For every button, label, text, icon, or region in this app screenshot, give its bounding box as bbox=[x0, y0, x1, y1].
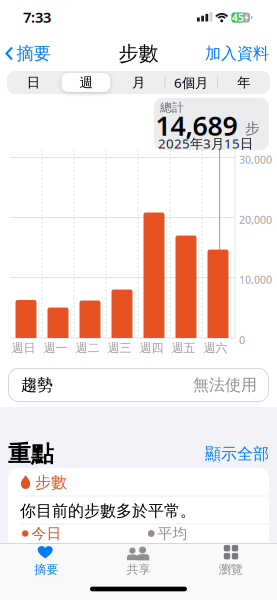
staticText: 顯示全部 bbox=[205, 444, 269, 464]
button[interactable]: 顯示全部 bbox=[197, 444, 269, 464]
staticText: 共享 bbox=[126, 562, 150, 577]
staticText: 你目前的步數多於平常。 bbox=[20, 501, 196, 521]
staticText: 週三 bbox=[107, 341, 131, 355]
staticText: 日 bbox=[27, 74, 40, 91]
staticText: 年 bbox=[237, 74, 250, 91]
button[interactable]: 加入資料 bbox=[197, 41, 269, 65]
staticText: 加入資料 bbox=[205, 44, 269, 63]
staticText: 月 bbox=[132, 74, 145, 91]
staticText: 6個月 bbox=[174, 74, 208, 91]
staticText: 步數 bbox=[35, 473, 67, 492]
staticText: 週日 bbox=[11, 341, 35, 355]
staticText: 瀏覽 bbox=[219, 562, 243, 577]
staticText: 20,000 bbox=[239, 212, 272, 227]
button[interactable]: 共享 bbox=[115, 545, 161, 573]
button[interactable]: 摘要 bbox=[5, 41, 67, 65]
button[interactable]: 週 bbox=[61, 71, 111, 94]
button[interactable]: 步數 bbox=[8, 468, 269, 552]
staticText: 週六 bbox=[203, 341, 227, 355]
staticText: 週 bbox=[79, 74, 92, 91]
button[interactable]: 年 bbox=[219, 71, 269, 94]
staticText: 摘要 bbox=[34, 562, 58, 577]
staticText: 10,000 bbox=[239, 272, 272, 287]
staticText: 摘要 bbox=[16, 43, 50, 64]
staticText: 30,000 bbox=[239, 152, 272, 167]
staticText: 趨勢 bbox=[21, 375, 53, 395]
button[interactable]: 日 bbox=[8, 71, 58, 94]
staticText: 今日 bbox=[31, 524, 61, 542]
staticText: 平均 bbox=[157, 524, 187, 542]
staticText: 週二 bbox=[75, 341, 99, 355]
staticText: 總計 bbox=[160, 100, 184, 115]
staticText: 45 bbox=[232, 10, 244, 24]
staticText: 週四 bbox=[139, 341, 163, 355]
staticText: 步數 bbox=[118, 41, 158, 66]
button[interactable]: 6個月 bbox=[166, 71, 216, 94]
staticText: 週一 bbox=[43, 341, 67, 355]
staticText: 週五 bbox=[171, 341, 195, 355]
staticText: 7:33 bbox=[23, 7, 51, 27]
staticText: 步 bbox=[245, 119, 260, 137]
staticText: 2025年3月15日 bbox=[158, 134, 253, 152]
button[interactable]: 瀏覽 bbox=[208, 545, 254, 573]
staticText: 無法使用 bbox=[193, 375, 257, 395]
staticText: 0 bbox=[239, 333, 245, 347]
staticText: 14,689 bbox=[155, 108, 237, 143]
button[interactable]: 摘要 bbox=[23, 545, 69, 573]
button[interactable]: 趨勢 bbox=[8, 368, 269, 402]
staticText: 重點 bbox=[8, 440, 54, 468]
button[interactable]: 月 bbox=[113, 71, 163, 94]
